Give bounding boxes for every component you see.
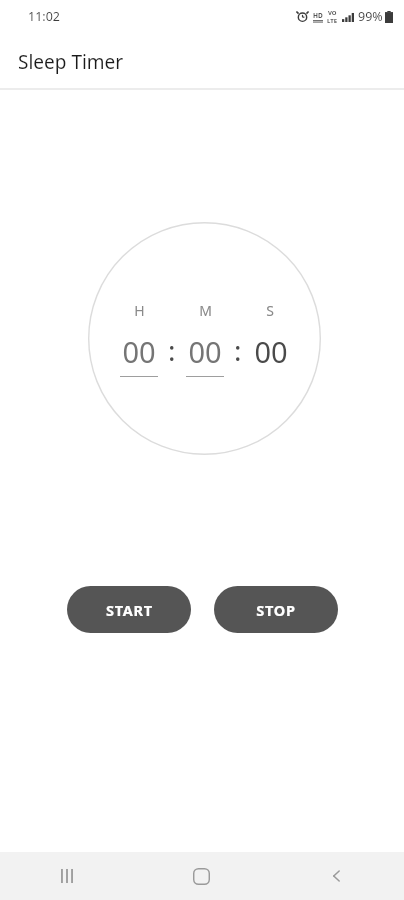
staticText: START [106, 600, 153, 620]
staticText: STOP [256, 600, 296, 620]
staticText: 11:02 [28, 8, 60, 25]
staticText: : [234, 331, 242, 369]
staticText: 00 [254, 332, 288, 371]
staticText: S [266, 301, 274, 320]
button[interactable]: 00 [117, 332, 161, 377]
staticText: 99% [358, 8, 383, 25]
staticText: Sleep Timer [18, 49, 124, 75]
staticText: : [168, 331, 176, 369]
staticText: H [134, 301, 145, 320]
button[interactable]: Recent apps [0, 852, 134, 900]
button[interactable]: STOP [214, 586, 338, 633]
button[interactable]: Back [269, 852, 404, 900]
staticText: VO [328, 9, 337, 17]
button[interactable]: 00 [249, 332, 293, 377]
button[interactable]: START [67, 586, 191, 633]
staticText: 00 [122, 332, 156, 371]
button[interactable]: Home [134, 852, 269, 900]
button[interactable]: 00 [183, 332, 227, 377]
staticText: LTE [327, 17, 338, 25]
staticText: HD [313, 11, 323, 20]
staticText: 00 [188, 332, 222, 371]
staticText: M [199, 301, 212, 320]
